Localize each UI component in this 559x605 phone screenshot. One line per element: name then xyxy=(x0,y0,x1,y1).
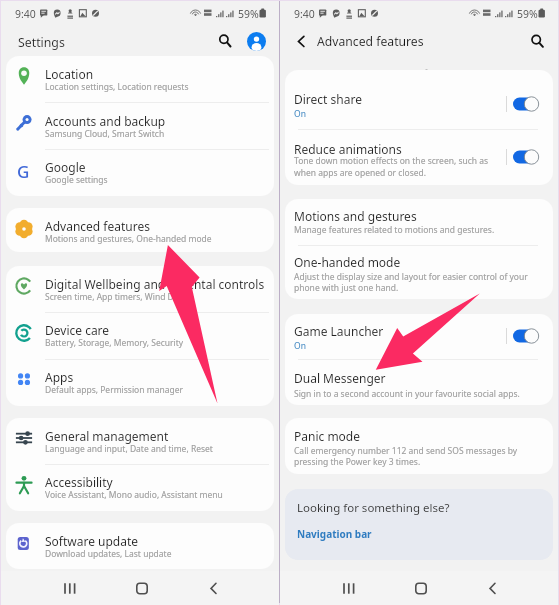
staticText: Digital Wellbeing and parental controls xyxy=(45,276,265,292)
staticText: Voice Assistant, Mono audio, Assistant m… xyxy=(45,489,223,501)
staticText: Advanced features xyxy=(317,33,424,50)
button[interactable] xyxy=(6,266,274,313)
staticText: 9:40 xyxy=(15,7,36,21)
staticText: Call emergency number 112 and send SOS m… xyxy=(294,445,518,457)
staticText: Settings xyxy=(18,34,65,51)
staticText: Location settings, Location requests xyxy=(45,81,189,93)
button[interactable] xyxy=(285,418,553,474)
staticText: Direct share xyxy=(294,91,362,107)
staticText: Location xyxy=(45,66,94,82)
staticText: Software update xyxy=(45,533,139,549)
button[interactable]: Search xyxy=(526,30,549,53)
button[interactable] xyxy=(6,312,274,359)
button[interactable]: Account xyxy=(247,32,266,51)
button[interactable]: Home xyxy=(125,572,158,604)
staticText: Panic mode xyxy=(294,428,361,444)
button[interactable] xyxy=(6,418,274,465)
staticText: 59% xyxy=(517,7,538,21)
staticText: when apps are opened or closed. xyxy=(294,167,427,179)
staticText: Motions and gestures xyxy=(294,208,417,224)
button[interactable] xyxy=(6,523,274,570)
staticText: phone with just one hand. xyxy=(294,282,399,294)
staticText: Adjust the display size and layout for e… xyxy=(294,271,528,283)
button[interactable] xyxy=(285,359,553,405)
staticText: Google xyxy=(45,159,86,175)
staticText: Screen time, App timers, Wind Down xyxy=(45,291,191,303)
button[interactable] xyxy=(285,314,553,359)
button[interactable]: Home xyxy=(404,572,437,604)
button[interactable] xyxy=(6,359,274,406)
staticText: Accessibility xyxy=(45,474,113,490)
staticText: Dual Messenger xyxy=(294,370,386,386)
staticText: Samsung Cloud, Smart Switch xyxy=(45,128,165,140)
staticText: Navigation bar xyxy=(297,527,372,541)
staticText: Reduce animations xyxy=(294,141,402,157)
button[interactable] xyxy=(6,208,274,255)
button[interactable] xyxy=(6,102,274,149)
button[interactable]: Navigation bar xyxy=(297,527,377,541)
staticText: Advanced features xyxy=(45,218,150,234)
button[interactable] xyxy=(6,56,274,103)
staticText: G xyxy=(17,160,30,183)
button[interactable]: Back xyxy=(197,572,230,604)
button[interactable]: Search xyxy=(214,30,237,53)
staticText: Language and input, Date and time, Reset xyxy=(45,443,213,455)
button[interactable] xyxy=(285,129,553,185)
staticText: General management xyxy=(45,428,169,444)
button[interactable] xyxy=(285,70,553,129)
button[interactable] xyxy=(285,245,553,299)
staticText: Tone down motion effects on the screen, … xyxy=(294,155,489,167)
button[interactable]: Game Launcher switch xyxy=(512,326,544,346)
button[interactable]: Recents xyxy=(53,572,86,604)
staticText: Battery, Storage, Memory, Security xyxy=(45,337,184,349)
staticText: Device care xyxy=(45,322,110,338)
button[interactable] xyxy=(6,149,274,196)
button[interactable]: Reduce animations switch xyxy=(512,147,544,167)
staticText: Download updates, Last update xyxy=(45,548,172,560)
button[interactable]: Recents xyxy=(332,572,365,604)
staticText: On xyxy=(294,108,306,120)
staticText: Motions and gestures, One-handed mode xyxy=(45,233,212,245)
button[interactable]: Direct share switch xyxy=(512,94,544,114)
staticText: On xyxy=(294,340,306,352)
button[interactable] xyxy=(6,464,274,511)
staticText: One-handed mode xyxy=(294,254,401,270)
staticText: Manage features related to motions and g… xyxy=(294,224,495,236)
button[interactable]: Back xyxy=(476,572,509,604)
staticText: Game Launcher xyxy=(294,323,384,339)
staticText: Looking for something else? xyxy=(297,500,450,516)
staticText: Google settings xyxy=(45,174,108,186)
button[interactable] xyxy=(285,199,553,244)
staticText: Sign in to a second account in your favo… xyxy=(294,388,520,400)
staticText: Apps xyxy=(45,369,74,385)
staticText: pressing the Power key 3 times. xyxy=(294,456,421,468)
button[interactable]: Back xyxy=(290,30,314,54)
staticText: Accounts and backup xyxy=(45,113,166,129)
staticText: 9:40 xyxy=(294,7,315,21)
staticText: 59% xyxy=(238,7,259,21)
staticText: Default apps, Permission manager xyxy=(45,384,183,396)
